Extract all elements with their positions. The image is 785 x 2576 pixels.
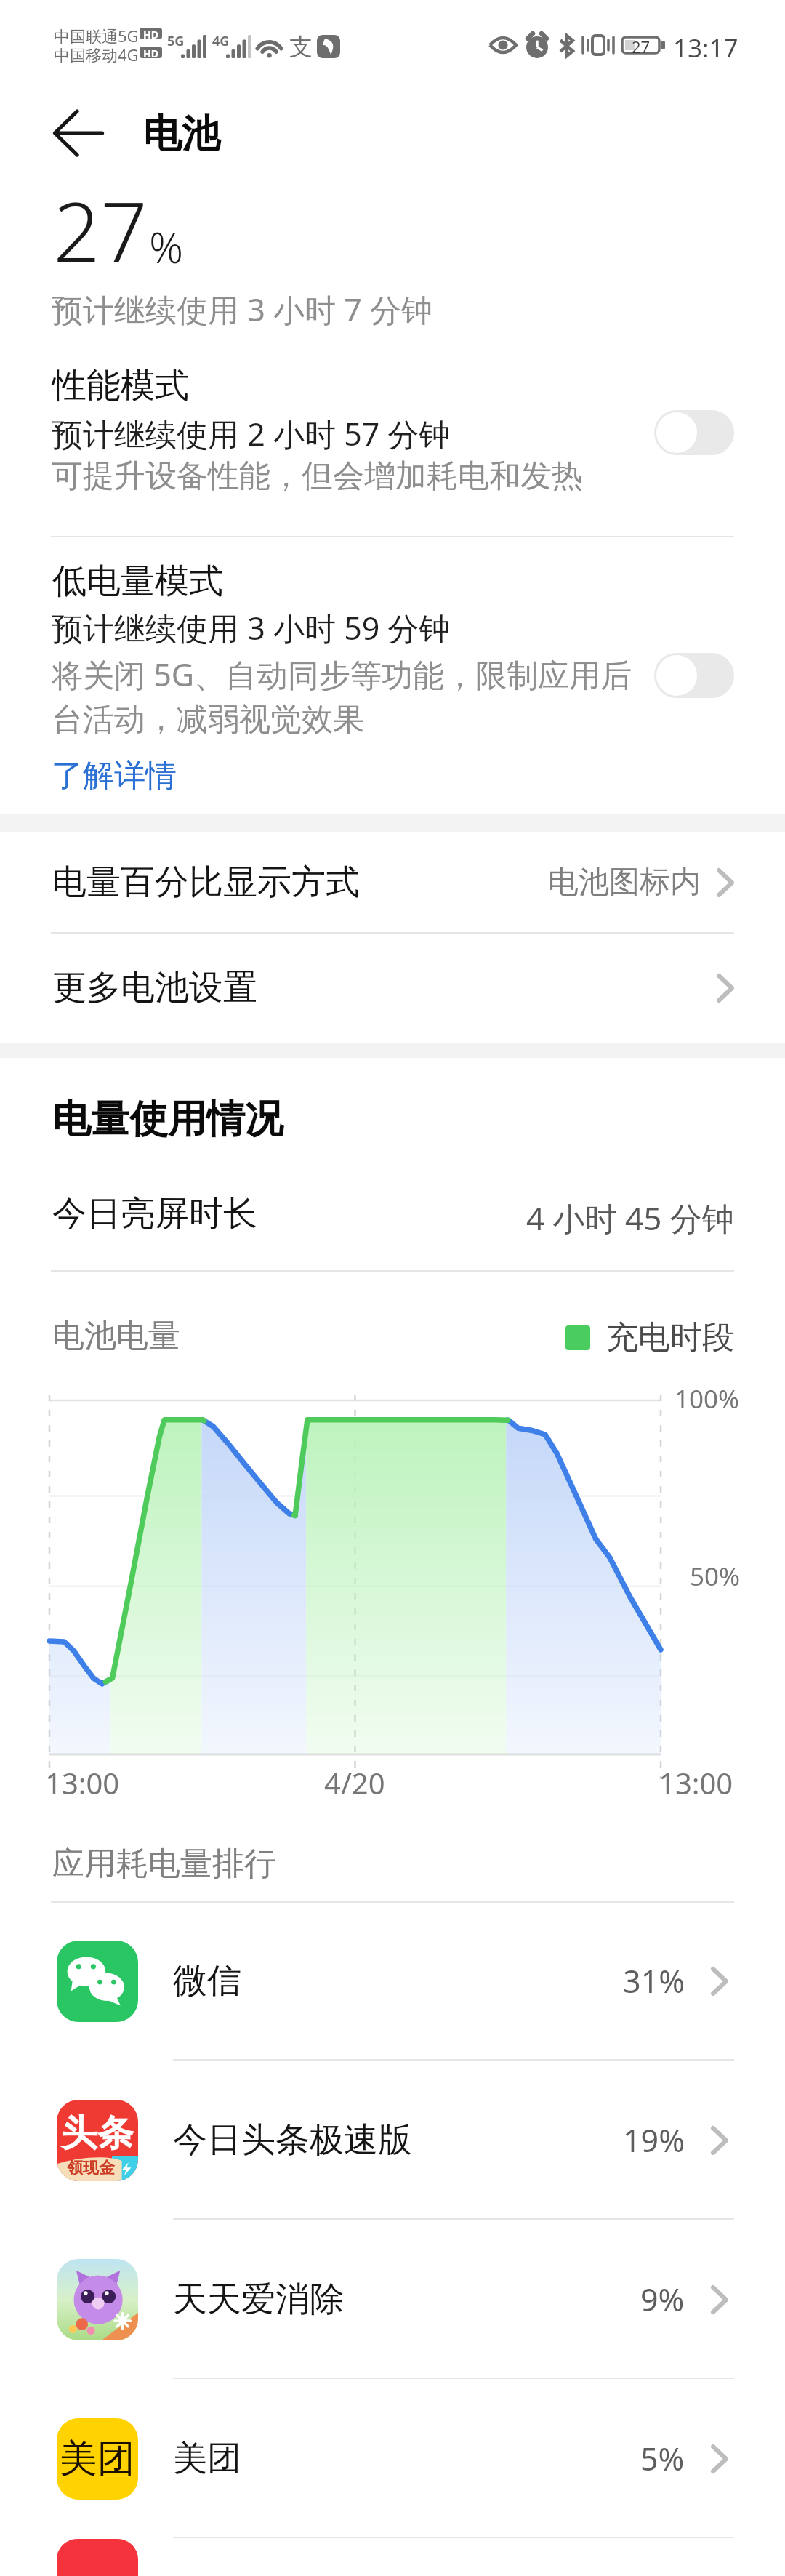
staticText: 13:17 (673, 31, 738, 65)
staticText: 预计继续使用 3 小时 7 分钟 (52, 288, 432, 331)
staticText: 美团 (173, 2437, 241, 2480)
staticText: 13:00 (659, 1763, 733, 1802)
staticText: 13:00 (45, 1763, 120, 1802)
staticText: 27 (53, 174, 148, 286)
staticText: 4 小时 45 分钟 (526, 1196, 734, 1240)
staticText: 31% (623, 1959, 685, 2002)
staticText: 100% (675, 1381, 740, 1416)
staticText: 9% (640, 2278, 685, 2321)
staticText: 头条 (61, 2111, 134, 2156)
button[interactable]: 了解详情 (52, 756, 177, 795)
staticText: 预计继续使用 3 小时 59 分钟 (52, 606, 451, 649)
staticText: 了解详情 (52, 756, 177, 795)
staticText: 4/20 (324, 1763, 385, 1802)
staticText: 27 (632, 36, 651, 53)
staticText: 低电量模式 (52, 560, 223, 603)
button[interactable]: 微信 (0, 1901, 785, 2061)
staticText: 更多电池设置 (52, 966, 257, 1009)
staticText: 今日头条极速版 (173, 2119, 412, 2162)
staticText: 预计继续使用 2 小时 57 分钟 (52, 412, 451, 455)
staticText: 美团 (60, 2435, 135, 2483)
staticText: 将关闭 5G、自动同步等功能，限制应用后台活动，减弱视觉效果 (52, 653, 633, 739)
staticText: 5% (640, 2437, 685, 2480)
staticText: 性能模式 (52, 364, 189, 407)
staticText: 微信 (173, 1959, 241, 2002)
button[interactable]: 美团 (0, 2379, 785, 2538)
staticText: 电量百分比显示方式 (52, 861, 360, 904)
staticText: 中国移动4G (54, 44, 139, 65)
staticText: 支 (289, 32, 313, 61)
staticText: 中国联通5G (54, 25, 139, 47)
staticText: 50% (690, 1559, 741, 1594)
button[interactable]: 更多电池设置 (0, 933, 785, 1043)
staticText: HD (143, 28, 158, 39)
staticText: % (149, 218, 184, 276)
staticText: 今日亮屏时长 (52, 1192, 257, 1235)
staticText: HD (143, 47, 158, 58)
staticText: 领现金 (67, 2158, 115, 2178)
button[interactable]: Switch, off (654, 410, 734, 455)
staticText: 19% (623, 2119, 685, 2162)
button[interactable]: 头条 (0, 2061, 785, 2220)
button[interactable]: 电量百分比显示方式 (0, 832, 785, 932)
staticText: 电量使用情况 (52, 1095, 283, 1144)
button[interactable]: Switch, off (654, 653, 734, 698)
staticText: 电池电量 (52, 1316, 180, 1356)
staticText: 应用耗电量排行 (52, 1844, 276, 1884)
button[interactable]: 天天爱消除 (0, 2220, 785, 2379)
staticText: 电池图标内 (548, 863, 701, 902)
staticText: 4G (212, 32, 230, 50)
staticText: 充电时段 (606, 1317, 734, 1357)
button[interactable]: Back (47, 102, 110, 164)
staticText: 天天爱消除 (173, 2278, 344, 2321)
staticText: 5G (167, 32, 185, 50)
staticText: 可提升设备性能，但会增加耗电和发热 (52, 457, 583, 496)
staticText: 电池 (143, 110, 220, 159)
